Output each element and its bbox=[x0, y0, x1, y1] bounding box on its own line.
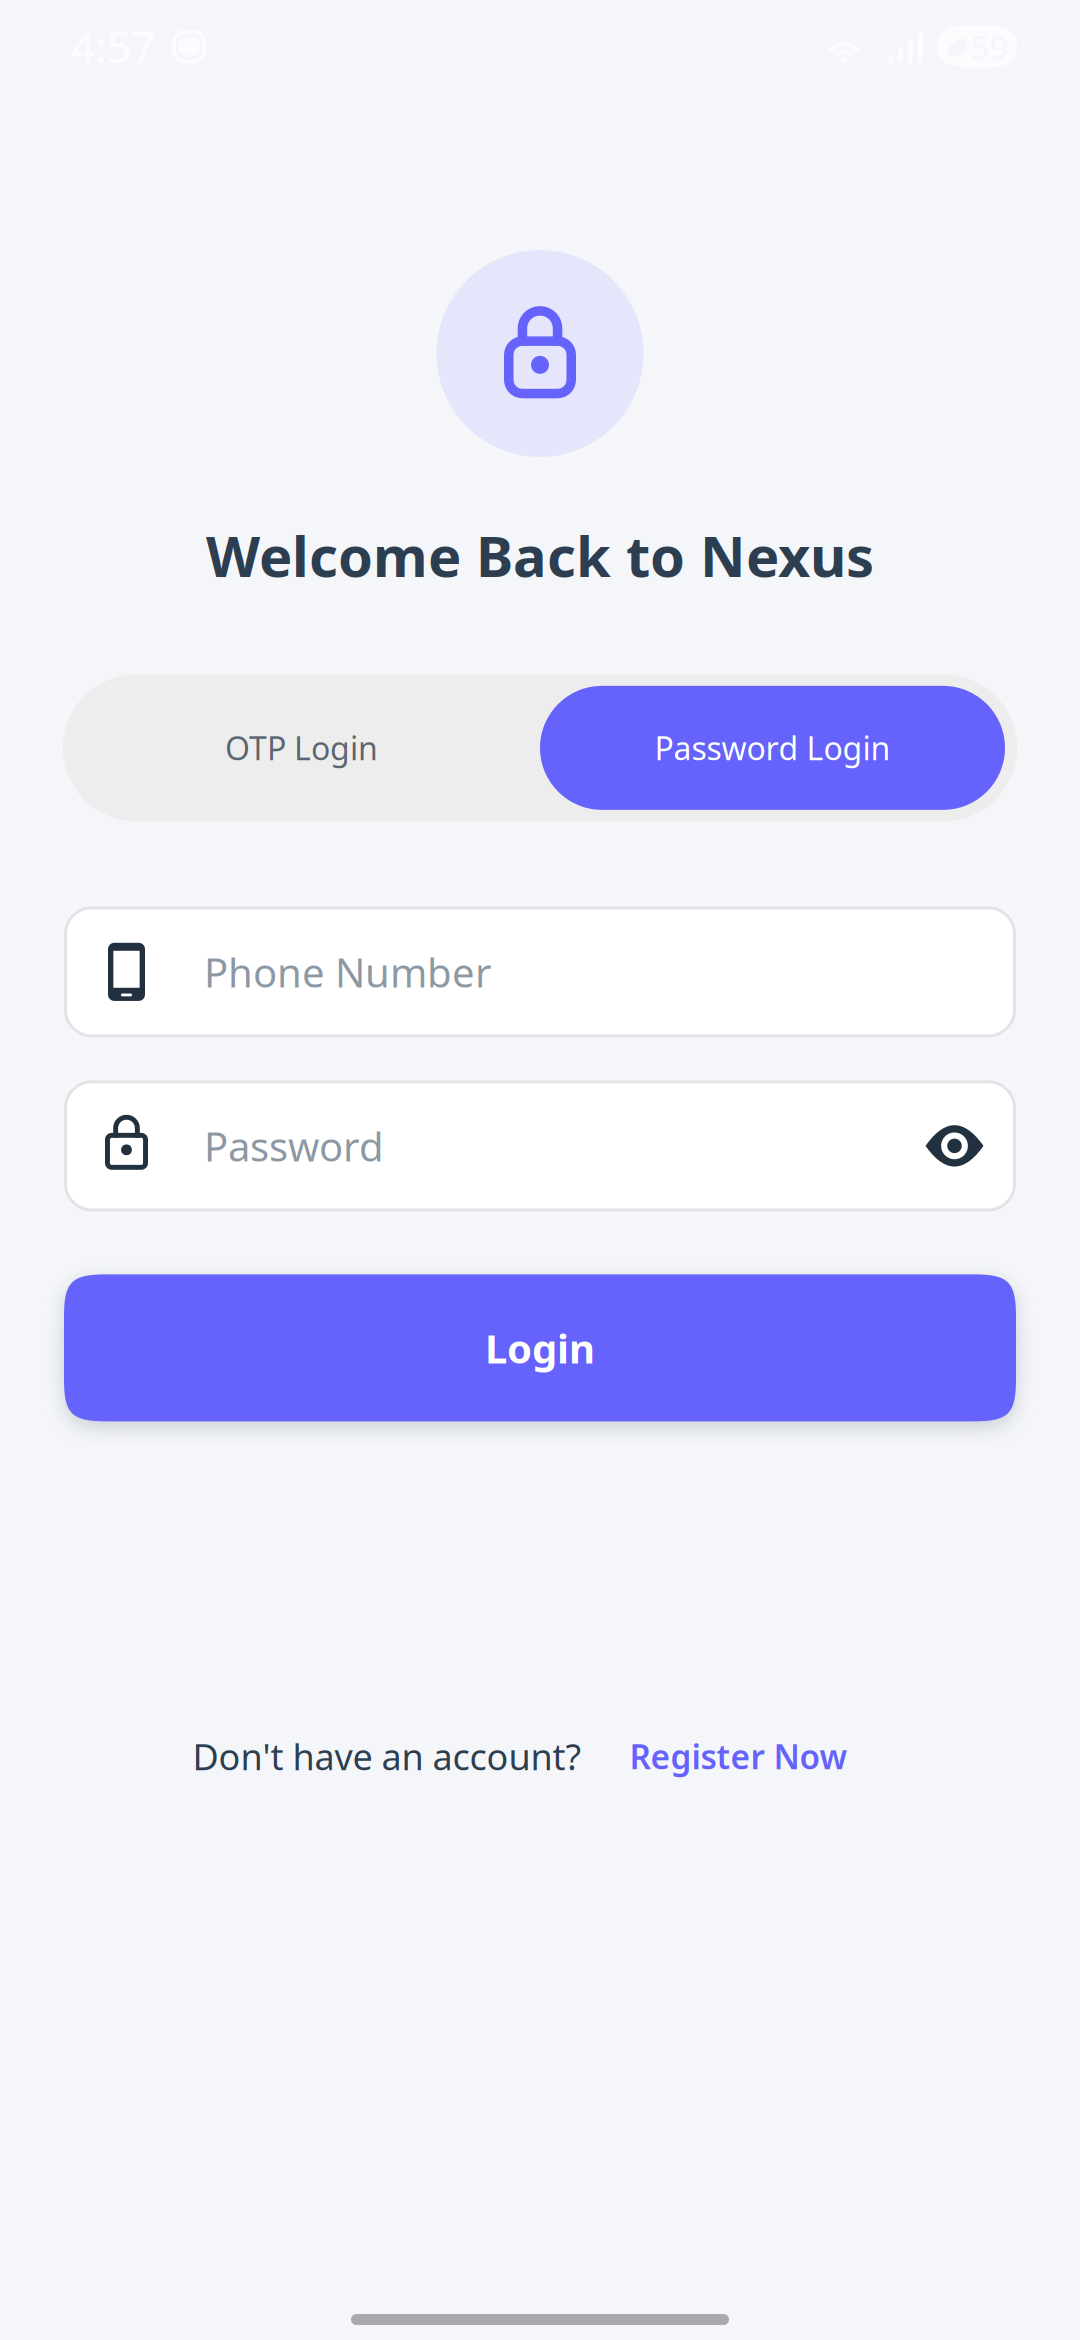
button[interactable]: Login bbox=[64, 1274, 1016, 1421]
staticText: OTP Login bbox=[225, 727, 378, 769]
staticText: Phone Number bbox=[204, 945, 492, 998]
staticText: Welcome Back to Nexus bbox=[206, 518, 874, 592]
button[interactable]: OTP Login bbox=[63, 674, 540, 821]
staticText: Password bbox=[204, 1119, 384, 1172]
button[interactable]: Show password bbox=[893, 1080, 1016, 1211]
staticText: 59 bbox=[970, 24, 1008, 69]
staticText: Register Now bbox=[629, 1734, 847, 1778]
button[interactable]: Register Now bbox=[629, 1734, 847, 1778]
staticText: Login bbox=[485, 1321, 595, 1374]
staticText: Password Login bbox=[654, 727, 890, 769]
button[interactable]: Password Login bbox=[540, 674, 1017, 821]
staticText: Don't have an account? bbox=[192, 1732, 581, 1780]
